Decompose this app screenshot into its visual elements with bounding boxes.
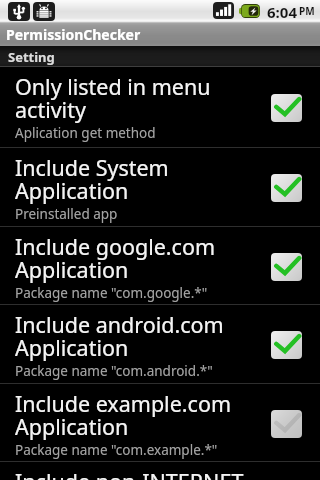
button[interactable]: Disabled, unchecked xyxy=(271,410,302,438)
button[interactable]: Include non-INTERNET Application. Permis… xyxy=(0,462,320,480)
staticText: Package name "com.example.*" xyxy=(15,441,218,459)
staticText: Include example.com Application xyxy=(15,389,260,442)
staticText: PermissionChecker xyxy=(6,25,141,44)
staticText: Only listed in menu activity xyxy=(15,72,260,125)
button[interactable]: Include google.com Application. Package … xyxy=(0,227,320,305)
staticText: Include non-INTERNET Application xyxy=(15,467,260,480)
button[interactable]: Enabled, checked xyxy=(271,253,302,281)
staticText: Include google.com Application xyxy=(15,232,260,285)
button[interactable]: Enabled, checked xyxy=(271,331,302,359)
button[interactable]: Include example.com Application. Package… xyxy=(0,384,320,462)
button[interactable]: Include System Application. Preinstalled… xyxy=(0,148,320,227)
button[interactable]: Enabled, checked xyxy=(271,174,302,202)
other: Android system xyxy=(33,2,55,21)
other: Battery charging xyxy=(239,4,260,18)
other: Signal strength xyxy=(213,2,234,19)
staticText: Include System Application xyxy=(15,153,260,206)
button[interactable]: Only listed in menu activity. Aplication… xyxy=(0,67,320,148)
button[interactable]: Include android.com Application. Package… xyxy=(0,305,320,384)
staticText: Setting xyxy=(8,48,55,66)
staticText: Package name "com.google.*" xyxy=(15,284,208,302)
staticText: PM xyxy=(299,4,315,18)
other: USB connected xyxy=(8,2,30,21)
button[interactable]: Enabled, checked xyxy=(271,94,302,122)
staticText: Aplication get method xyxy=(15,124,156,142)
staticText: Package name "com.android.*" xyxy=(15,362,213,380)
staticText: Include android.com Application xyxy=(15,310,260,363)
staticText: Preinstalled app xyxy=(15,205,118,223)
staticText: 6:04 xyxy=(267,2,297,19)
